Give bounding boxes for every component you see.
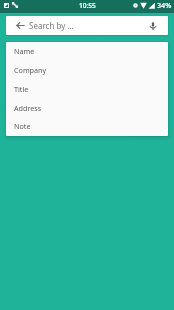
staticText: 10:55 <box>79 1 96 10</box>
staticText: Name <box>14 46 35 56</box>
staticText: Title <box>14 84 29 94</box>
button[interactable]: Back <box>6 16 34 35</box>
staticText: 34% <box>157 0 172 10</box>
button[interactable]: Name <box>6 42 168 61</box>
staticText: Note <box>14 121 31 131</box>
button[interactable]: Company <box>6 61 168 80</box>
staticText: Company <box>14 65 47 75</box>
button[interactable]: Voice search <box>138 16 168 35</box>
staticText: Address <box>14 103 42 113</box>
button[interactable]: Note <box>6 118 168 136</box>
button[interactable]: Address <box>6 99 168 118</box>
button[interactable]: Title <box>6 80 168 99</box>
staticText: Search by ... <box>29 20 74 31</box>
